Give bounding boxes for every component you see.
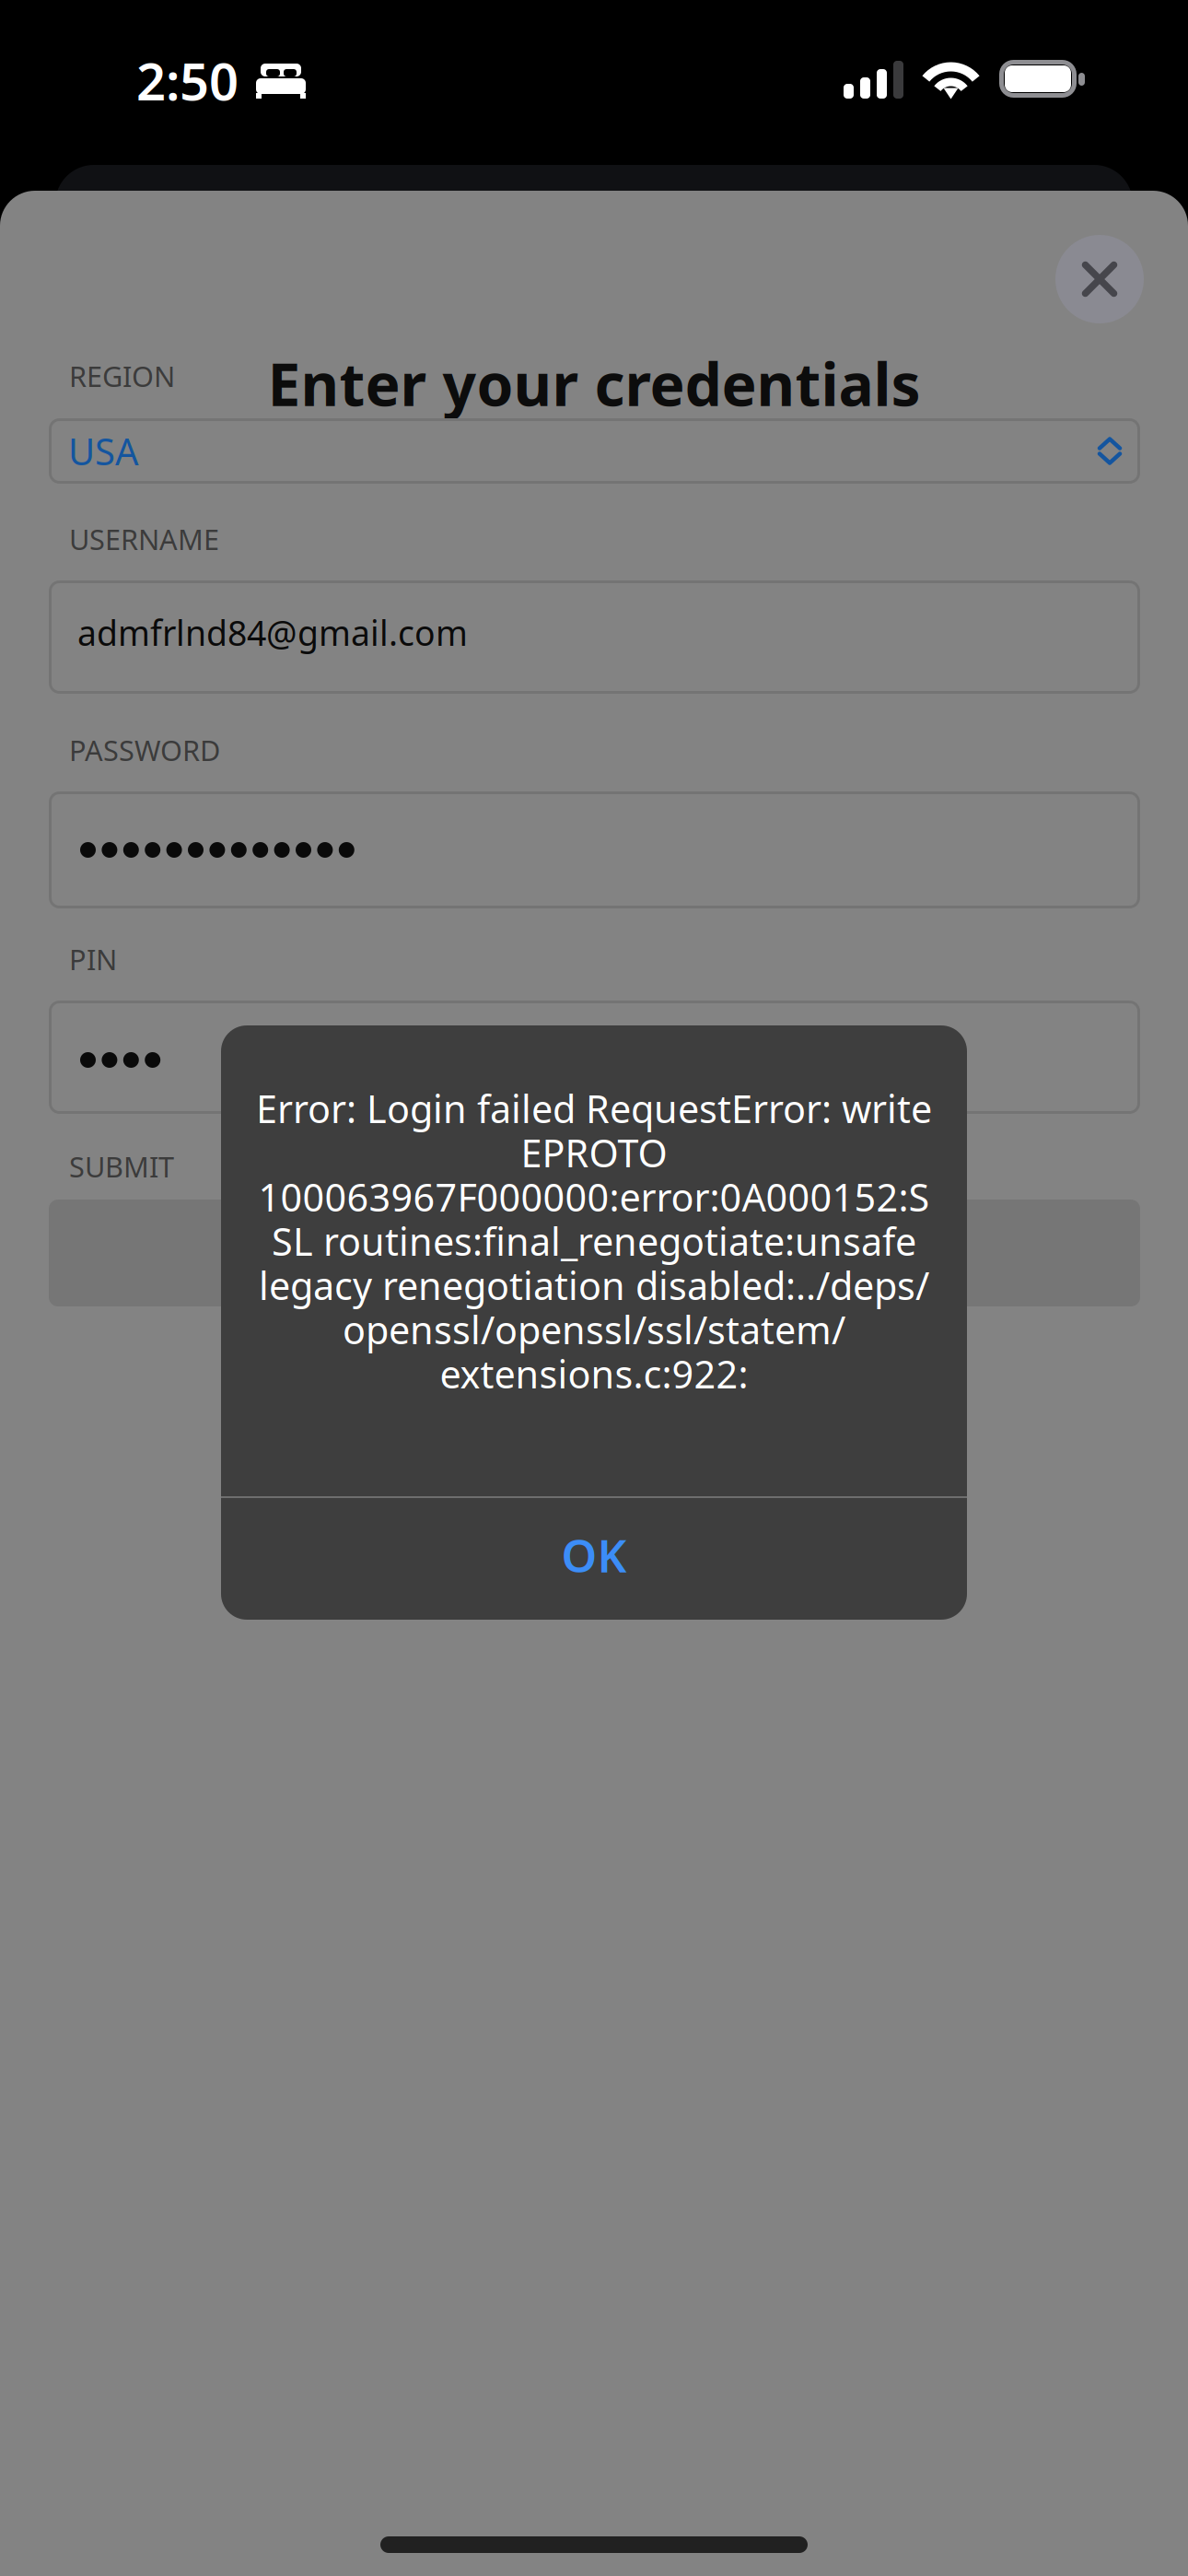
staticText: SUBMIT — [69, 1148, 174, 1185]
staticText: admfrlnd84@gmail.com — [77, 610, 468, 655]
staticText: EPROTO — [521, 1127, 667, 1178]
button[interactable]: Password — [49, 791, 1140, 908]
button[interactable]: admfrlnd84@gmail.com — [49, 580, 1140, 694]
staticText: SL routines:final_renegotiate:unsafe — [272, 1216, 916, 1266]
staticText: legacy renegotiation disabled:../deps/ — [259, 1260, 929, 1311]
staticText: extensions.c:922: — [440, 1348, 748, 1399]
staticText: PIN — [69, 940, 117, 978]
staticText: REGION — [69, 357, 175, 395]
staticText: openssl/openssl/ssl/statem/ — [343, 1304, 845, 1355]
button[interactable]: PIN — [49, 1001, 1140, 1114]
button[interactable]: OK — [221, 1494, 967, 1615]
staticText: Enter your credentials — [268, 344, 920, 422]
staticText: OK — [561, 1525, 627, 1585]
staticText: USA — [68, 426, 139, 475]
button[interactable]: Close — [1055, 235, 1144, 323]
staticText: 100063967F000000:error:0A000152:S — [258, 1172, 930, 1222]
button[interactable]: USA — [49, 418, 1140, 484]
staticText: PASSWORD — [69, 731, 220, 769]
staticText: Error: Login failed RequestError: write — [256, 1083, 932, 1134]
staticText: 2:50 — [136, 46, 239, 115]
staticText: USERNAME — [69, 520, 219, 558]
button[interactable] — [49, 1200, 1140, 1306]
